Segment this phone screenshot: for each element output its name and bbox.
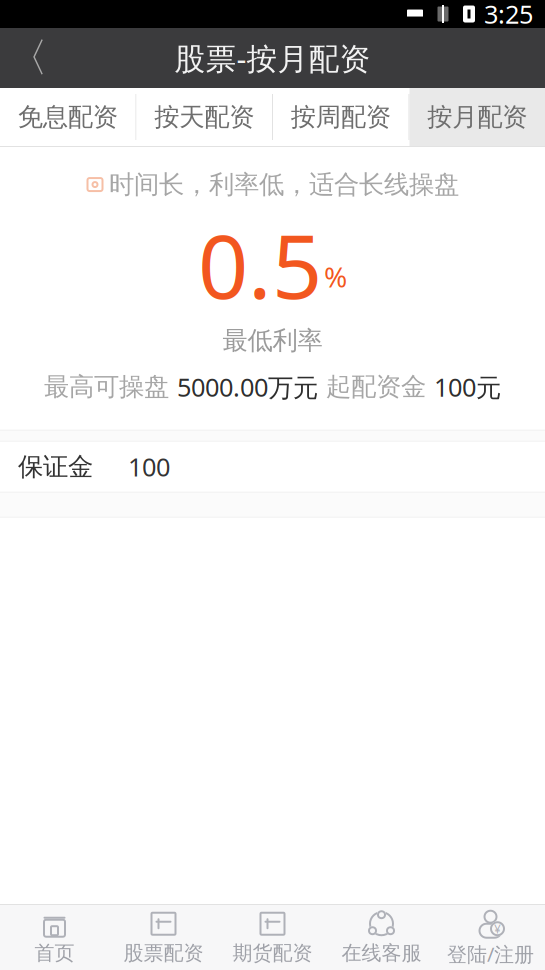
staticText: 100 <box>128 450 170 483</box>
staticText: 期货配资 <box>232 941 312 965</box>
staticText: 股票配资 <box>123 941 203 965</box>
staticText: 按月配资 <box>427 101 527 132</box>
staticText: 5000.00万元 <box>177 370 318 404</box>
button[interactable]: 在线客服 <box>327 905 436 970</box>
button[interactable]: ¥ <box>436 905 545 970</box>
staticText: 最高可操盘 <box>44 371 169 402</box>
staticText: 首页 <box>34 941 74 965</box>
button[interactable]: 股票配资 <box>109 905 218 970</box>
staticText: 起配资金 <box>326 371 426 402</box>
staticText: 在线客服 <box>341 941 421 965</box>
staticText: 登陆/注册 <box>447 941 534 967</box>
staticText: 按周配资 <box>291 101 391 132</box>
button[interactable]: 按天配资 <box>136 88 272 146</box>
staticText: 最低利率 <box>222 325 322 356</box>
staticText: % <box>324 258 347 295</box>
button[interactable]: 期货配资 <box>218 905 327 970</box>
staticText: 时间长，利率低，适合长线操盘 <box>109 169 459 200</box>
button[interactable]: 按月配资 <box>409 88 545 146</box>
button[interactable]: Back <box>0 28 56 88</box>
staticText: 3:25 <box>484 0 533 31</box>
button[interactable]: 保证金 <box>0 442 545 492</box>
staticText: 〈 <box>8 33 48 82</box>
staticText: 免息配资 <box>18 101 118 132</box>
staticText: 0.5 <box>198 206 322 323</box>
button[interactable]: 首页 <box>0 905 109 970</box>
staticText: 100保证金 + 1.2元利息 <box>128 877 383 911</box>
staticText: 操盘规则 <box>18 920 118 951</box>
button[interactable]: 免息配资 <box>0 88 135 146</box>
staticText: 保证金 <box>18 451 93 482</box>
staticText: ¥ <box>494 921 501 937</box>
staticText: 按天配资 <box>154 101 254 132</box>
staticText: 股票-按月配资 <box>174 38 370 78</box>
staticText: 100元 <box>434 370 501 404</box>
button[interactable]: 按周配资 <box>273 88 408 146</box>
